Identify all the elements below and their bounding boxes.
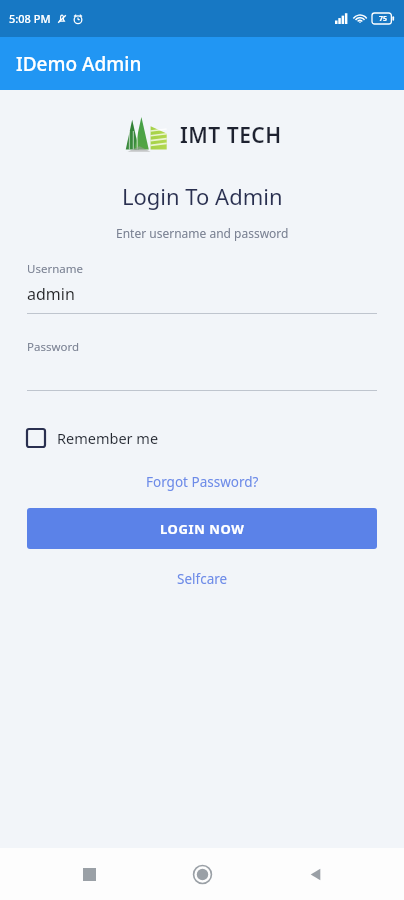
staticText: Login To Admin xyxy=(122,181,283,211)
staticText: 5:08 PM xyxy=(9,11,51,26)
button[interactable]: admin xyxy=(27,283,377,305)
staticText: Username xyxy=(27,261,83,277)
staticText: admin xyxy=(27,283,75,305)
staticText: Enter username and password xyxy=(116,225,289,241)
staticText: 75 xyxy=(379,14,388,24)
staticText: Remember me xyxy=(57,428,159,448)
button[interactable]: Home xyxy=(178,850,226,898)
staticText: IMT TECH xyxy=(180,121,282,150)
button[interactable]: Forgot Password? xyxy=(142,469,263,495)
staticText: LOGIN NOW xyxy=(160,520,245,538)
staticText: Password xyxy=(27,339,80,355)
button[interactable]: Remember me xyxy=(27,424,159,452)
staticText: IDemo Admin xyxy=(16,51,142,77)
button[interactable]: Back xyxy=(291,850,339,898)
button[interactable]: LOGIN NOW xyxy=(27,508,377,549)
button[interactable]: Selfcare xyxy=(173,566,232,592)
button[interactable]: Recent apps xyxy=(65,850,113,898)
